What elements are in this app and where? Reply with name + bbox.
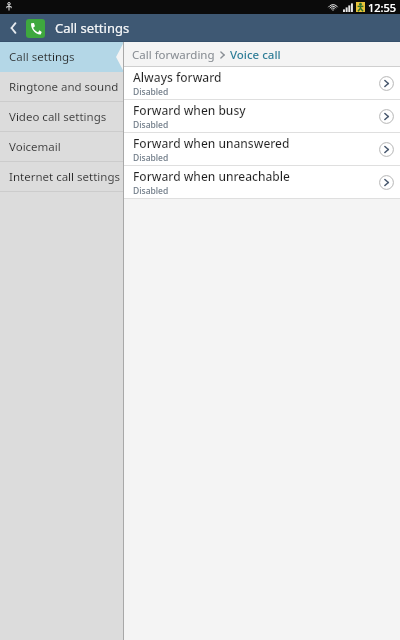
staticText: Voice call <box>230 47 281 63</box>
staticText: Call settings <box>9 49 75 65</box>
button[interactable]: Forward when busy <box>124 100 400 132</box>
button[interactable]: Video call settings <box>0 102 124 132</box>
button[interactable]: Voicemail <box>0 132 124 162</box>
staticText: Disabled <box>133 86 169 98</box>
button[interactable]: Call settings <box>0 42 124 72</box>
staticText: Ringtone and sound <box>9 79 119 95</box>
staticText: Forward when unanswered <box>133 135 290 151</box>
staticText: Disabled <box>133 185 169 197</box>
button[interactable]: Open Forward when busy <box>372 102 400 130</box>
button[interactable]: Forward when unreachable <box>124 166 400 198</box>
staticText: Disabled <box>133 119 169 131</box>
button[interactable]: Internet call settings <box>0 162 124 192</box>
button[interactable]: Ringtone and sound <box>0 72 124 102</box>
staticText: Always forward <box>133 69 222 85</box>
button[interactable]: Forward when unanswered <box>124 133 400 165</box>
staticText: Call forwarding <box>132 47 215 63</box>
staticText: 12:55 <box>368 0 397 14</box>
staticText: Forward when unreachable <box>133 168 290 184</box>
staticText: Video call settings <box>9 109 107 125</box>
button[interactable]: Back <box>0 14 26 42</box>
staticText: Forward when busy <box>133 102 246 118</box>
staticText: Internet call settings <box>9 169 120 185</box>
staticText: Voicemail <box>9 139 61 155</box>
staticText: Disabled <box>133 152 169 164</box>
button[interactable]: Open Forward when unanswered <box>372 135 400 163</box>
button[interactable]: Always forward <box>124 67 400 99</box>
button[interactable]: Open Always forward <box>372 69 400 97</box>
button[interactable]: Open Forward when unreachable <box>372 168 400 196</box>
staticText: Call settings <box>55 19 130 37</box>
